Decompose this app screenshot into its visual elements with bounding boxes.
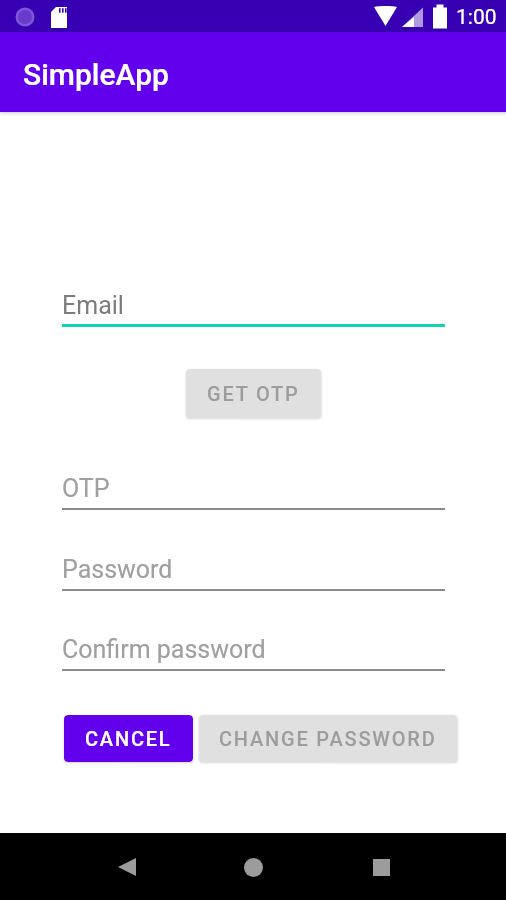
staticText: Email (62, 291, 124, 320)
staticText: 1:00 (456, 5, 497, 30)
staticText: CHANGE PASSWORD (219, 727, 437, 750)
staticText: SimpleApp (23, 57, 169, 92)
button[interactable]: CHANGE PASSWORD (199, 715, 457, 762)
button[interactable]: Home (225, 839, 281, 895)
staticText: Confirm password (62, 635, 266, 664)
button[interactable]: Back (99, 839, 155, 895)
button[interactable]: Email (62, 283, 445, 327)
button[interactable]: Password (62, 547, 445, 591)
button[interactable]: CANCEL (64, 715, 193, 762)
staticText: Password (62, 555, 173, 584)
staticText: GET OTP (207, 382, 300, 405)
button[interactable]: Confirm password (62, 627, 445, 671)
button[interactable]: Recents (353, 839, 409, 895)
button[interactable]: OTP (62, 466, 445, 510)
button[interactable]: GET OTP (186, 369, 321, 418)
staticText: CANCEL (85, 727, 172, 750)
staticText: OTP (62, 474, 110, 503)
